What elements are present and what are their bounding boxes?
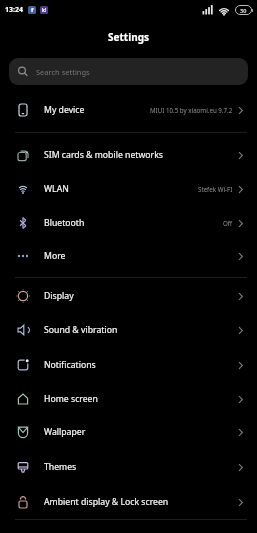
button[interactable]: Notifications [0, 348, 257, 382]
staticText: Themes [44, 461, 77, 473]
staticText: Search settings [36, 67, 90, 77]
staticText: WLAN [44, 183, 69, 195]
button[interactable]: Sound & vibration [0, 313, 257, 347]
staticText: Settings [108, 30, 149, 44]
button[interactable]: Search settings [9, 58, 248, 85]
button[interactable]: Ambient display & Lock screen [0, 485, 257, 519]
staticText: My device [44, 104, 85, 116]
staticText: Bluetooth [44, 217, 85, 229]
staticText: k! [42, 7, 47, 13]
button[interactable]: Home screen [0, 382, 257, 416]
button[interactable]: Themes [0, 450, 257, 484]
button[interactable]: Wallpaper [0, 415, 257, 449]
staticText: Ambient display & Lock screen [44, 496, 169, 508]
staticText: Sound & vibration [44, 324, 118, 336]
button[interactable]: SIM cards & mobile networks [0, 138, 257, 172]
staticText: Home screen [44, 393, 98, 405]
staticText: Off [223, 219, 233, 227]
staticText: MIUI 10.5 by xiaomi.eu 9.7.2 [150, 106, 233, 114]
staticText: SIM cards & mobile networks [44, 149, 163, 161]
button[interactable]: Bluetooth [0, 206, 257, 240]
button[interactable]: WLAN [0, 172, 257, 206]
staticText: 30 [240, 7, 247, 14]
staticText: 13:24 [5, 5, 23, 15]
button[interactable]: Display [0, 279, 257, 313]
button[interactable]: My device [0, 93, 257, 127]
staticText: Display [44, 290, 74, 302]
staticText: More [44, 250, 66, 262]
staticText: Wallpaper [44, 426, 86, 438]
button[interactable]: More [0, 239, 257, 273]
staticText: Notifications [44, 359, 96, 371]
staticText: Stefek Wi-FI [198, 185, 233, 193]
staticText: f [31, 6, 34, 14]
